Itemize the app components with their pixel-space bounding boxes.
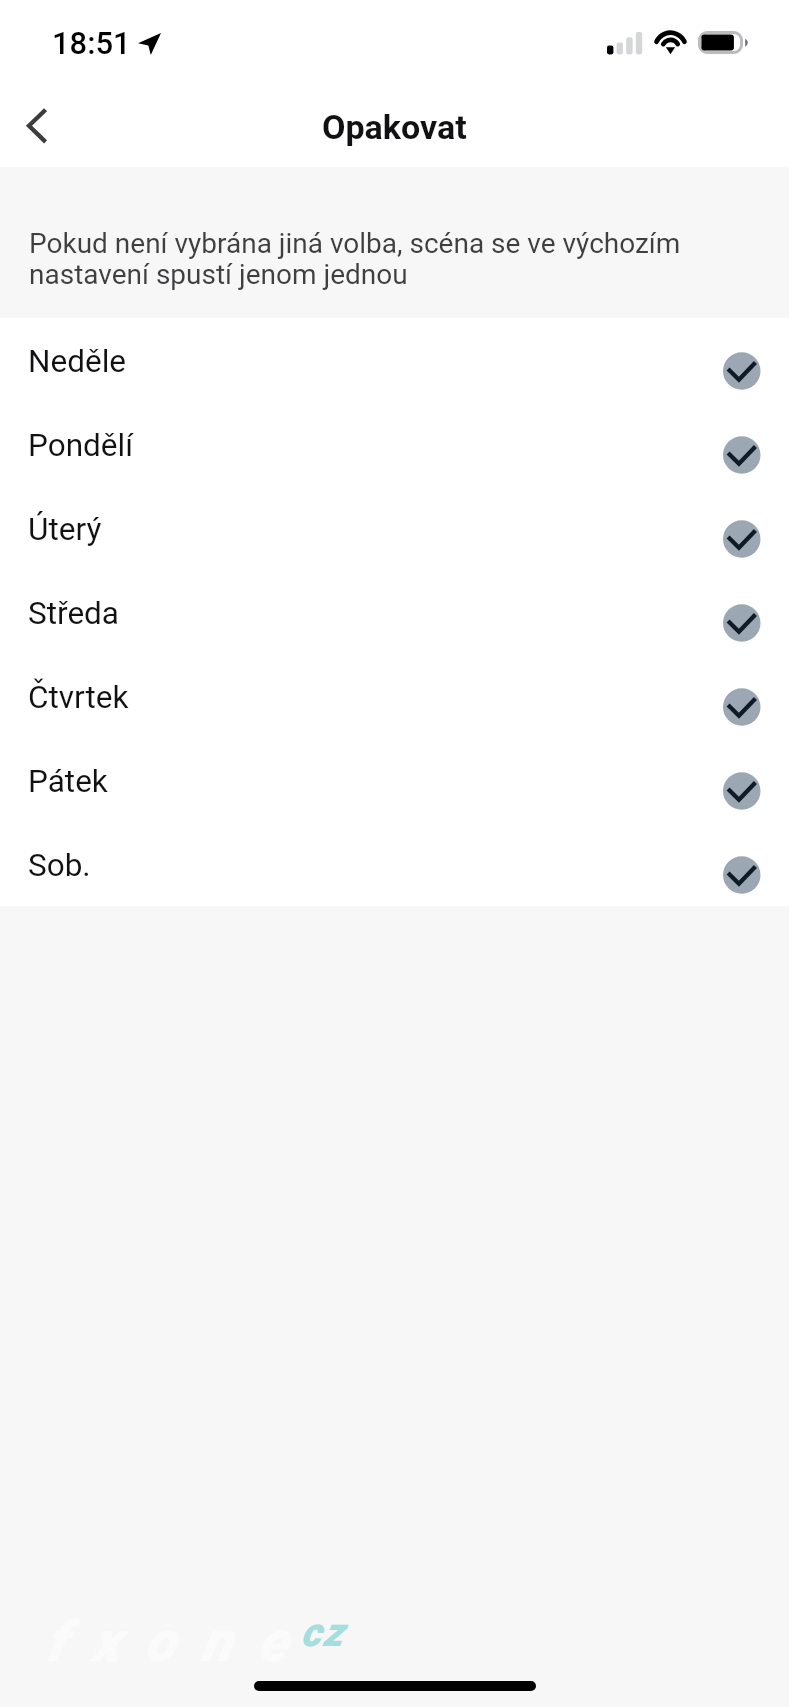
staticText: Neděle bbox=[28, 343, 127, 380]
staticText: cz bbox=[301, 1609, 346, 1656]
staticText: Středa bbox=[28, 595, 119, 632]
button[interactable]: Back bbox=[0, 87, 80, 167]
staticText: 18:51 bbox=[52, 25, 131, 61]
button[interactable]: Neděle bbox=[0, 318, 789, 402]
button[interactable]: Pátek bbox=[0, 738, 789, 822]
button[interactable]: Pondělí bbox=[0, 402, 789, 486]
button[interactable]: Středa bbox=[0, 570, 789, 654]
button[interactable]: Sob. bbox=[0, 822, 789, 906]
staticText: Opakovat bbox=[322, 107, 467, 147]
staticText: Pátek bbox=[28, 763, 108, 800]
staticText: Sob. bbox=[28, 847, 91, 884]
button[interactable]: Čtvrtek bbox=[0, 654, 789, 738]
button[interactable]: Úterý bbox=[0, 486, 789, 570]
staticText: Úterý bbox=[28, 511, 102, 548]
staticText: Pokud není vybrána jiná volba, scéna se … bbox=[29, 227, 739, 290]
staticText: fxone bbox=[46, 1609, 314, 1675]
staticText: Čtvrtek bbox=[28, 679, 129, 716]
staticText: Pondělí bbox=[28, 427, 133, 464]
